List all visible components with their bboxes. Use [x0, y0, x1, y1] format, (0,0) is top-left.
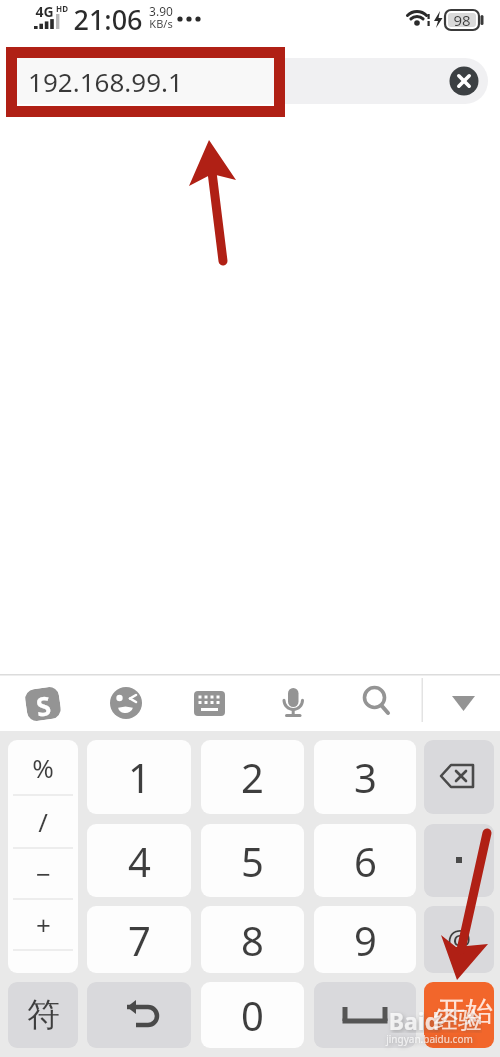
staticText: 8 — [241, 913, 264, 967]
staticText: 2 — [241, 750, 264, 804]
staticText: + — [36, 907, 51, 942]
staticText: − — [36, 856, 51, 891]
staticText: 3.90 — [149, 3, 173, 16]
staticText: @ — [447, 921, 472, 958]
staticText: / — [38, 804, 48, 839]
staticText: 6 — [354, 834, 377, 888]
staticText: 经验 — [434, 1005, 482, 1033]
staticText: % — [32, 750, 54, 785]
staticText: 192.168.99.1 — [28, 64, 183, 99]
staticText: 9 — [354, 913, 377, 967]
staticText: 1 — [128, 750, 151, 804]
staticText: 0 — [241, 988, 264, 1042]
staticText: 符 — [27, 994, 60, 1036]
staticText: 开始 — [437, 994, 493, 1029]
staticText: 21:06 — [73, 1, 143, 36]
staticText: 7 — [128, 913, 151, 967]
staticText: HD — [56, 3, 68, 13]
staticText: KB/s — [149, 16, 173, 29]
staticText: 4 — [128, 834, 151, 888]
staticText: 5 — [241, 834, 264, 888]
staticText: 4G — [35, 2, 54, 18]
staticText: S — [34, 687, 53, 721]
staticText: jingyan.baidu.com — [386, 1032, 473, 1046]
staticText: 98 — [453, 10, 471, 30]
staticText: 3 — [354, 750, 377, 804]
staticText: Baidu — [383, 1005, 445, 1033]
